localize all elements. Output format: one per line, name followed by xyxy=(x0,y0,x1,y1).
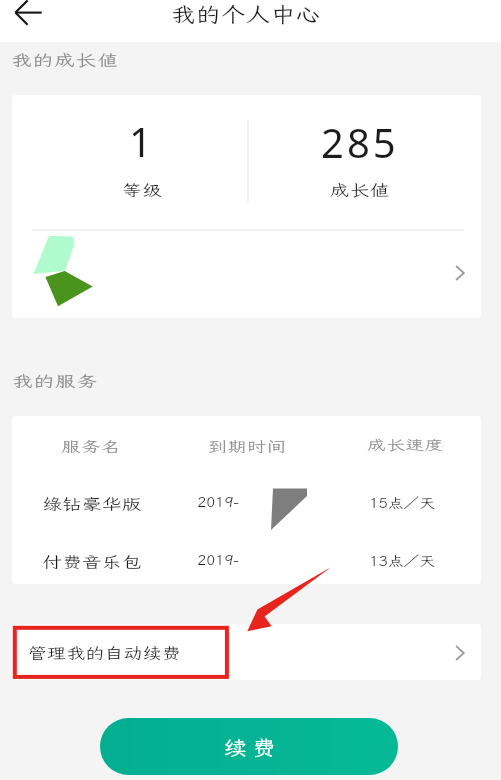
staticText: 1 xyxy=(129,114,155,168)
button[interactable]: Back xyxy=(4,0,50,42)
staticText: 15点／天 xyxy=(369,494,435,512)
button[interactable] xyxy=(12,231,481,318)
staticText: 到期时间 xyxy=(208,436,286,455)
staticText: 2019- xyxy=(197,493,239,512)
staticText: 2019- xyxy=(197,551,239,570)
staticText: 续费 xyxy=(223,734,281,760)
staticText: 我的成长值 xyxy=(11,50,119,71)
staticText: 付费音乐包 xyxy=(42,552,142,573)
staticText: 绿钻豪华版 xyxy=(42,494,142,515)
staticText: 我的服务 xyxy=(12,371,99,392)
staticText: 管理我的自动续费 xyxy=(28,643,181,663)
staticText: 成长速度 xyxy=(367,436,444,455)
staticText: 等级 xyxy=(122,180,162,201)
button[interactable] xyxy=(100,718,398,775)
button[interactable] xyxy=(12,624,481,680)
staticText: 13点／天 xyxy=(369,552,435,570)
staticText: 服务名 xyxy=(61,436,121,456)
staticText: 成长值 xyxy=(330,180,390,201)
staticText: 285 xyxy=(321,115,399,169)
staticText: 我的个人中心 xyxy=(171,0,321,28)
